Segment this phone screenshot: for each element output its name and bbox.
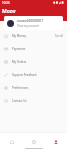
button[interactable]: Account	[45, 133, 67, 146]
button[interactable]: My Orders	[0, 55, 67, 68]
button[interactable]: Home	[0, 133, 23, 146]
staticText: Preferences	[12, 86, 29, 90]
button[interactable]: My Money	[0, 29, 67, 42]
button[interactable]: Support Feedback	[0, 68, 67, 81]
button[interactable]: Shop	[23, 133, 45, 146]
staticText: My Money	[12, 34, 27, 38]
button[interactable]: Payments	[0, 42, 67, 55]
staticText: View my account	[17, 24, 40, 28]
button[interactable]: Preferences	[0, 81, 67, 94]
staticText: 10:35	[2, 1, 10, 5]
staticText: See all	[55, 34, 63, 38]
staticText: xxxxx00000001	[17, 18, 44, 23]
staticText: Support Feedback	[12, 73, 37, 77]
staticText: Contact Us	[12, 99, 27, 103]
staticText: My Orders	[12, 60, 27, 64]
button[interactable]: Contact Us	[0, 94, 67, 107]
button[interactable]: xxxxx00000001	[4, 16, 63, 30]
staticText: Payments	[12, 47, 26, 51]
staticText: Moov	[2, 8, 16, 15]
